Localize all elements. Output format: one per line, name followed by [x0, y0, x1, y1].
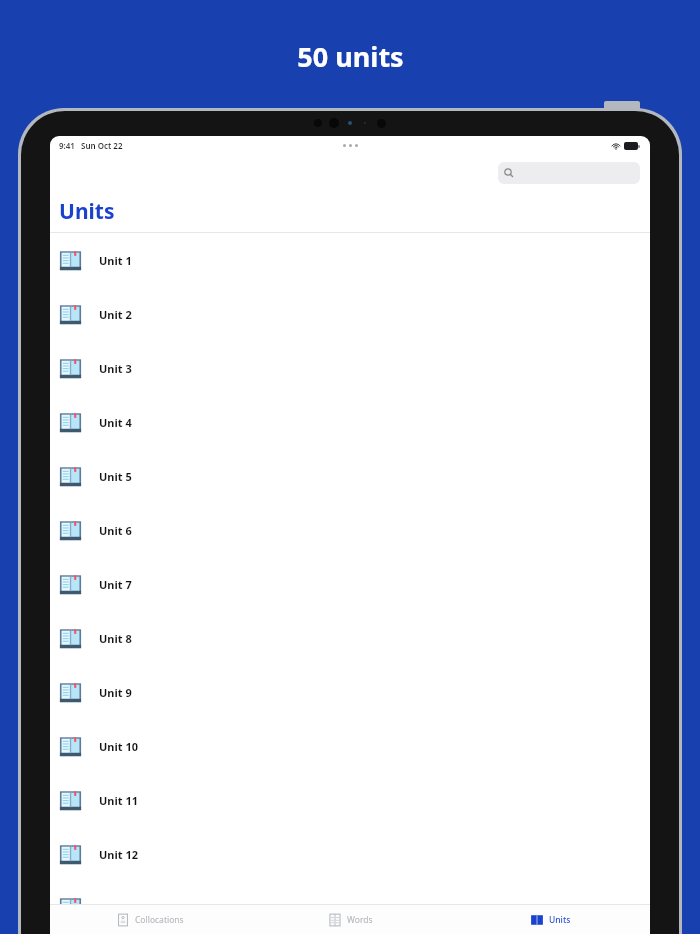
button[interactable]: Units — [450, 905, 650, 934]
button[interactable]: Unit 12 — [50, 827, 650, 881]
button[interactable]: Unit 7 — [50, 557, 650, 611]
button[interactable]: Collocations — [50, 905, 250, 934]
staticText: Unit 13 — [99, 900, 138, 915]
button[interactable]: Unit 9 — [50, 665, 650, 719]
button[interactable]: Search — [498, 162, 640, 184]
button[interactable]: Unit 5 — [50, 449, 650, 503]
button[interactable]: Unit 3 — [50, 341, 650, 395]
staticText: 9:41 — [59, 140, 75, 151]
staticText: Unit 10 — [99, 739, 138, 754]
button[interactable]: Unit 11 — [50, 773, 650, 827]
button[interactable]: Unit 1 — [50, 233, 650, 287]
button[interactable]: Words — [250, 905, 450, 934]
staticText: Units — [59, 197, 115, 226]
button[interactable]: Unit 2 — [50, 287, 650, 341]
staticText: Units — [549, 914, 571, 926]
staticText: Unit 4 — [99, 415, 132, 430]
button[interactable]: Unit 4 — [50, 395, 650, 449]
staticText: Unit 1 — [99, 253, 132, 268]
button[interactable]: Unit 6 — [50, 503, 650, 557]
staticText: Words — [347, 914, 373, 926]
staticText: Unit 8 — [99, 631, 132, 646]
button[interactable]: Unit 13 — [50, 881, 650, 934]
staticText: Sun Oct 22 — [81, 140, 123, 151]
staticText: Unit 7 — [99, 577, 132, 592]
staticText: Unit 6 — [99, 523, 132, 538]
staticText: 50 units — [297, 38, 404, 75]
staticText: Unit 5 — [99, 469, 132, 484]
staticText: Unit 9 — [99, 685, 132, 700]
button[interactable]: Unit 8 — [50, 611, 650, 665]
staticText: Collocations — [135, 914, 184, 926]
staticText: Unit 3 — [99, 361, 132, 376]
button[interactable]: Unit 10 — [50, 719, 650, 773]
staticText: Unit 2 — [99, 307, 132, 322]
staticText: Unit 11 — [99, 793, 138, 808]
staticText: Unit 12 — [99, 847, 138, 862]
